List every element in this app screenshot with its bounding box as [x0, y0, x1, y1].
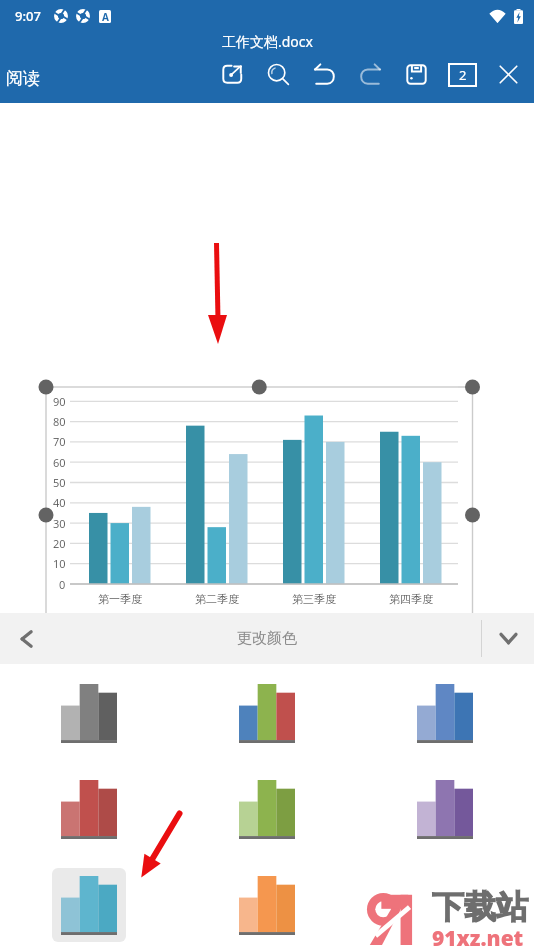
staticText: 20	[53, 536, 66, 551]
button[interactable]: Colour scheme 7	[50, 866, 128, 944]
staticText: A	[102, 10, 109, 23]
button[interactable]: 阅读	[0, 52, 46, 103]
staticText: 30	[53, 516, 66, 531]
button[interactable]: Back	[0, 613, 52, 664]
staticText: 90	[53, 394, 66, 409]
button[interactable]: Colour scheme 8	[228, 866, 306, 944]
button[interactable]: Save	[393, 52, 439, 103]
staticText: 10	[53, 556, 66, 571]
button[interactable]: Search	[255, 52, 301, 103]
staticText: 2	[459, 66, 467, 84]
button[interactable]: Colour scheme 6	[406, 770, 484, 848]
button[interactable]: Colour scheme 2	[228, 674, 306, 752]
staticText: 60	[53, 455, 66, 470]
staticText: 第一季度	[98, 592, 142, 606]
staticText: 下载站	[432, 887, 528, 927]
staticText: 第二季度	[195, 592, 239, 606]
button[interactable]: Open in another app	[209, 52, 255, 103]
staticText: 91xz.net	[432, 924, 524, 950]
button[interactable]: Colour scheme 3	[406, 674, 484, 752]
button[interactable]: Open documents, 2	[439, 52, 485, 103]
button[interactable]: Collapse panel	[482, 613, 534, 664]
staticText: 第三季度	[292, 592, 336, 606]
staticText: 更改颜色	[237, 629, 297, 648]
button[interactable]: Colour scheme 5	[228, 770, 306, 848]
staticText: 50	[53, 475, 66, 490]
button[interactable]: Close	[485, 52, 531, 103]
button[interactable]: Undo	[301, 52, 347, 103]
button[interactable]: Redo	[347, 52, 393, 103]
staticText: 70	[53, 434, 66, 449]
staticText: 工作文档.docx	[222, 32, 313, 51]
button[interactable]: Colour scheme 4	[50, 770, 128, 848]
button[interactable]: Colour scheme 1	[50, 674, 128, 752]
staticText: 0	[59, 577, 66, 592]
staticText: 80	[53, 414, 66, 429]
staticText: 9:07	[15, 7, 41, 25]
staticText: 阅读	[6, 68, 40, 89]
staticText: 第四季度	[389, 592, 433, 606]
staticText: 40	[53, 495, 66, 510]
